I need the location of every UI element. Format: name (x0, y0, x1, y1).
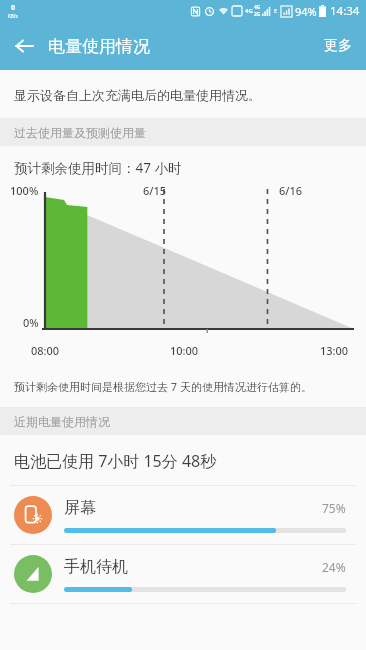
staticText: 4G (254, 4, 261, 11)
button[interactable]: 手机待机 (0, 545, 366, 603)
staticText: 6/15 (143, 183, 167, 198)
staticText: 14:34 (330, 3, 360, 19)
staticText: 预计剩余使用时间：47 小时 (14, 159, 182, 177)
staticText: 2G (254, 11, 261, 18)
staticText: 6/16 (279, 183, 303, 198)
staticText: 屏幕 (64, 498, 322, 518)
button[interactable]: 更多 (310, 22, 366, 70)
staticText: 0% (23, 315, 39, 330)
staticText: KB/s (8, 13, 18, 19)
staticText: 24% (322, 559, 346, 575)
staticText: 10:00 (170, 343, 199, 358)
staticText: 电池已使用 7小时 15分 48秒 (14, 450, 217, 472)
staticText: 更多 (324, 37, 352, 55)
staticText: 75% (322, 500, 346, 516)
staticText: 过去使用量及预测使用量 (14, 125, 146, 140)
staticText: 近期电量使用情况 (14, 414, 110, 429)
staticText: 手机待机 (64, 557, 322, 577)
staticText: 08:00 (31, 343, 60, 358)
staticText: 100% (10, 183, 39, 198)
staticText: 0 (11, 3, 16, 13)
staticText: 电量使用情况 (48, 36, 150, 57)
button[interactable]: 屏幕 (0, 486, 366, 544)
button[interactable]: Back (0, 22, 48, 70)
staticText: 13:00 (320, 343, 349, 358)
staticText: 94% (295, 4, 317, 19)
staticText: 4G (245, 7, 253, 15)
staticText: E (274, 7, 278, 15)
staticText: 显示设备自上次充满电后的电量使用情况。 (14, 87, 261, 103)
staticText: 预计剩余使用时间是根据您过去 7 天的使用情况进行估算的。 (14, 379, 313, 394)
